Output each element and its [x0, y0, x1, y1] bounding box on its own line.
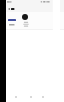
- button[interactable]: Recent apps: [38, 93, 48, 101]
- button[interactable]: Account name: [11, 5, 16, 12]
- button[interactable]: Profile photo: [22, 14, 28, 20]
- button[interactable]: Sign in: [7, 18, 18, 23]
- button[interactable]: Back: [11, 93, 21, 101]
- button[interactable]: Back: [6, 6, 12, 12]
- button[interactable]: Home: [26, 93, 36, 101]
- button[interactable]: Manage account: [7, 23, 18, 28]
